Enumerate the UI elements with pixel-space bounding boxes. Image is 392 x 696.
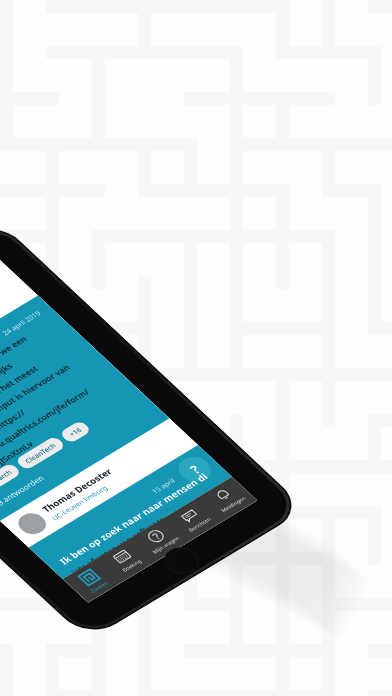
other: Zoeken <box>77 568 102 587</box>
other: Meldingen <box>212 487 235 504</box>
button[interactable]: Meldingen <box>198 477 257 521</box>
staticText: kuleuven.eu.qualtrics.com/jfe/form/ <box>0 386 92 472</box>
button[interactable]: +16 <box>58 420 92 444</box>
staticText: Ik ben op zoek naar naar mensen di <box>57 471 211 567</box>
staticText: 24 april 2019 <box>0 309 43 337</box>
staticText: Berichten <box>186 516 213 533</box>
staticText: iets afweten van software – <box>69 511 169 573</box>
button[interactable]: Thomas Decoster <box>0 418 198 547</box>
staticText: 3 antwoorden <box>0 473 46 507</box>
staticText: digitale tools regelen het meest <box>0 363 41 439</box>
staticText: Thomas Decoster <box>39 466 115 515</box>
button[interactable]: CleanTech <box>14 435 67 471</box>
staticText: ? <box>185 461 204 477</box>
button[interactable]: Boeking <box>96 538 156 582</box>
staticText: Boeking <box>120 558 143 573</box>
staticText: CleanTech <box>22 441 58 465</box>
staticText: groot belang. https:// <box>0 407 28 461</box>
staticText: Mijn vragen <box>150 535 181 555</box>
staticText: Voor ons onderzoek zoeken we een <box>0 334 30 417</box>
staticText: Research <box>0 468 14 490</box>
staticText: Zoeken <box>88 580 110 594</box>
other: Boeking <box>111 548 133 565</box>
button[interactable]: Zoeken <box>63 559 122 602</box>
other: Berichten <box>178 507 201 524</box>
staticText: gebruiken. Jouw input is hiervoor van <box>0 362 73 450</box>
button[interactable]: Berichten <box>164 497 223 541</box>
button[interactable]: Mijn vragen <box>130 518 189 562</box>
staticText: 15 april <box>149 476 177 495</box>
other: Mijn vragen <box>145 528 167 545</box>
staticText: Meldingen <box>219 495 247 514</box>
staticText: SV_6QOJJSnXtnLv <box>0 439 36 483</box>
staticText: +16 <box>67 425 84 438</box>
staticText: UC-Leuven limburg <box>49 483 110 522</box>
button[interactable]: Research <box>0 462 22 496</box>
staticText: aantal mensen die dagelijks <box>0 361 15 428</box>
